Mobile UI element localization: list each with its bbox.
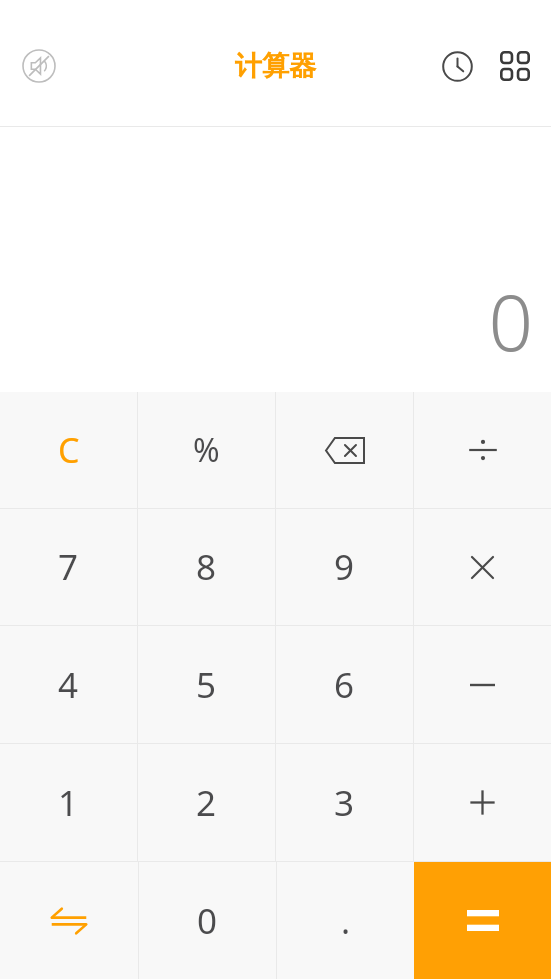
button[interactable]: 4 [0, 626, 137, 743]
button[interactable]: 3 [276, 744, 413, 861]
button[interactable]: Multiply [414, 509, 551, 625]
staticText: 1 [58, 779, 79, 827]
button[interactable]: Apps [491, 42, 539, 90]
staticText: 3 [334, 779, 355, 827]
button[interactable]: 6 [276, 626, 413, 743]
staticText: 9 [334, 543, 355, 591]
button[interactable]: Equals [414, 862, 551, 979]
staticText: 8 [196, 543, 217, 591]
button[interactable]: Divide [414, 392, 551, 508]
staticText: 6 [334, 661, 355, 709]
button[interactable]: History [433, 42, 481, 90]
button[interactable]: 9 [276, 509, 413, 625]
button[interactable]: C [0, 392, 137, 508]
button[interactable]: Minus [414, 626, 551, 743]
staticText: 5 [196, 661, 217, 709]
staticText: 0 [488, 268, 533, 374]
button[interactable]: Decimal point [277, 862, 414, 979]
button[interactable]: Mute [16, 43, 62, 89]
staticText: 计算器 [235, 49, 316, 83]
button[interactable]: 2 [138, 744, 275, 861]
staticText: 4 [58, 661, 79, 709]
button[interactable]: 0 [139, 862, 276, 979]
button[interactable]: % [138, 392, 275, 508]
staticText: 7 [58, 543, 79, 591]
button[interactable]: Backspace [276, 392, 413, 508]
button[interactable]: Plus [414, 744, 551, 861]
button[interactable]: Convert [0, 862, 138, 979]
staticText: 0 [197, 897, 218, 945]
staticText: 2 [196, 779, 217, 827]
button[interactable]: 5 [138, 626, 275, 743]
staticText: . [341, 898, 351, 944]
button[interactable]: 7 [0, 509, 137, 625]
button[interactable]: 1 [0, 744, 137, 861]
staticText: C [58, 427, 80, 473]
staticText: % [193, 428, 220, 472]
button[interactable]: 8 [138, 509, 275, 625]
